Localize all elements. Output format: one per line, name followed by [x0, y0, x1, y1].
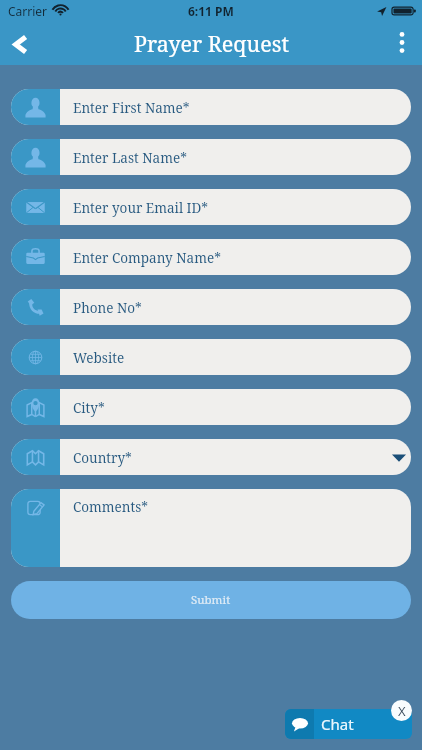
- button[interactable]: Close chat: [391, 700, 412, 721]
- button[interactable]: Back: [0, 24, 40, 64]
- button[interactable]: More options: [382, 24, 422, 64]
- staticText: Chat: [321, 714, 354, 734]
- button[interactable]: Country*: [11, 439, 411, 475]
- button[interactable]: Chat: [285, 709, 412, 739]
- staticText: Prayer Request: [134, 29, 289, 58]
- button[interactable]: Enter Last Name*: [11, 139, 411, 175]
- staticText: Submit: [191, 592, 231, 608]
- button[interactable]: City*: [11, 389, 411, 425]
- button[interactable]: Phone No*: [11, 289, 411, 325]
- staticText: Comments*: [73, 498, 149, 516]
- staticText: Carrier: [8, 3, 48, 19]
- staticText: Enter Company Name*: [73, 249, 221, 267]
- staticText: Enter First Name*: [73, 99, 190, 117]
- staticText: Country*: [73, 449, 132, 467]
- staticText: Website: [73, 349, 125, 367]
- button[interactable]: Comments*: [11, 489, 411, 567]
- staticText: Phone No*: [73, 299, 142, 317]
- staticText: 6:11 PM: [188, 3, 234, 19]
- staticText: X: [398, 702, 406, 720]
- button[interactable]: Submit: [11, 581, 411, 619]
- button[interactable]: Website: [11, 339, 411, 375]
- staticText: Enter Last Name*: [73, 149, 187, 167]
- staticText: Enter your Email ID*: [73, 199, 209, 217]
- button[interactable]: Enter First Name*: [11, 89, 411, 125]
- button[interactable]: Enter Company Name*: [11, 239, 411, 275]
- staticText: City*: [73, 399, 105, 417]
- button[interactable]: Enter your Email ID*: [11, 189, 411, 225]
